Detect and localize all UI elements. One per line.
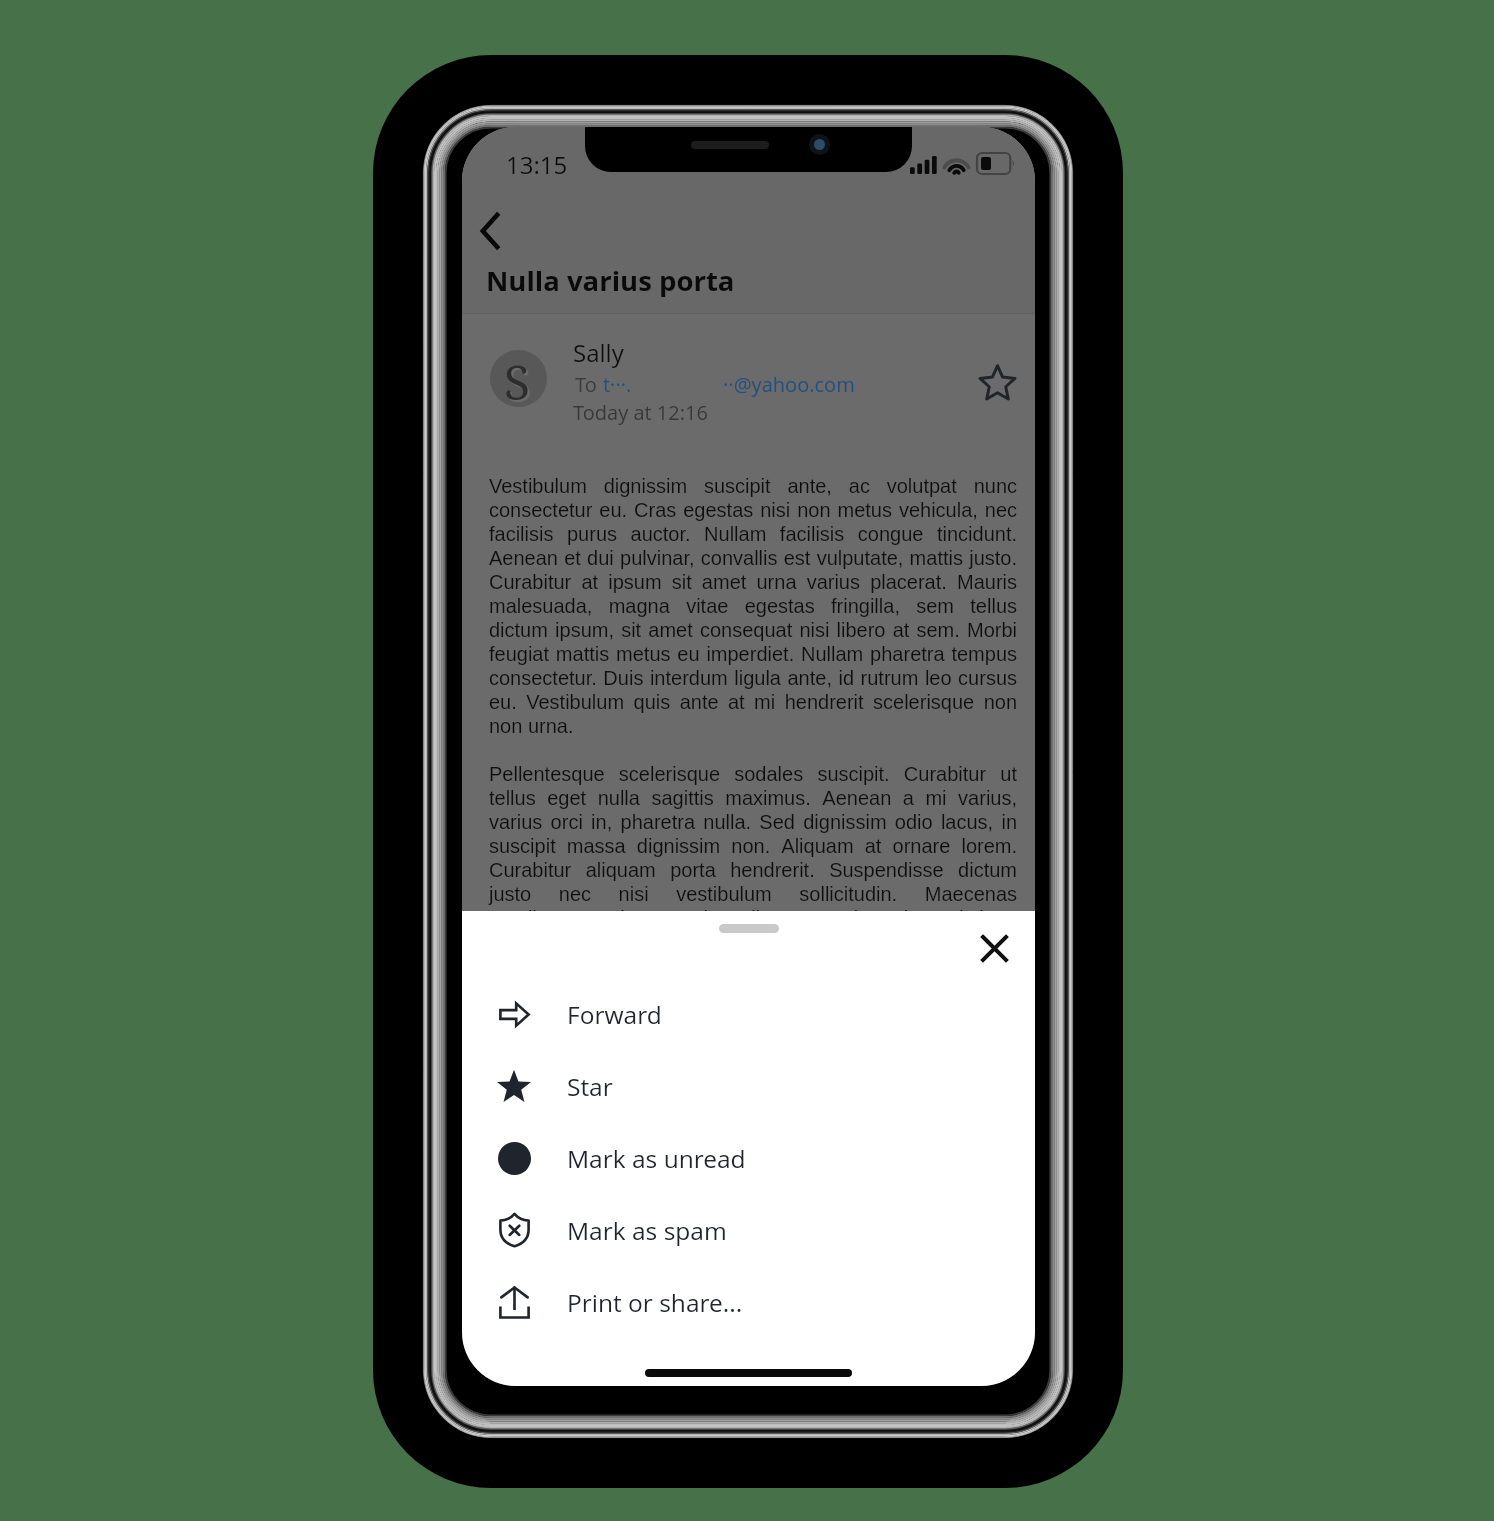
button[interactable]: Star email [973,358,1021,406]
button[interactable]: Star [462,1050,1035,1122]
staticText: Pellentesque scelerisque sodales suscipi… [489,763,1017,954]
staticText: To [575,371,597,398]
button[interactable]: Mark as unread [462,1122,1035,1194]
staticText: Print or share... [567,1286,743,1319]
staticText: ··@yahoo.com [723,371,855,398]
staticText: Forward [567,998,662,1031]
staticText: Mark as spam [567,1214,727,1247]
button[interactable]: Print or share [462,1266,1035,1338]
staticText: Star [567,1070,613,1103]
staticText: 13:15 [506,148,568,181]
staticText: Nulla varius porta [486,262,735,299]
button[interactable]: Forward [462,978,1035,1050]
staticText: Mark as unread [567,1142,746,1175]
button[interactable]: Close [970,924,1018,972]
button[interactable]: Mark as spam [462,1194,1035,1266]
staticText: S [506,351,533,407]
staticText: Sally [573,336,624,369]
staticText: t···. [603,371,632,398]
staticText: Today at 12:16 [573,399,708,426]
staticText: Vestibulum dignissim suscipit ante, ac v… [489,475,1017,738]
button[interactable]: Back [464,205,516,257]
staticText: S [504,350,531,406]
